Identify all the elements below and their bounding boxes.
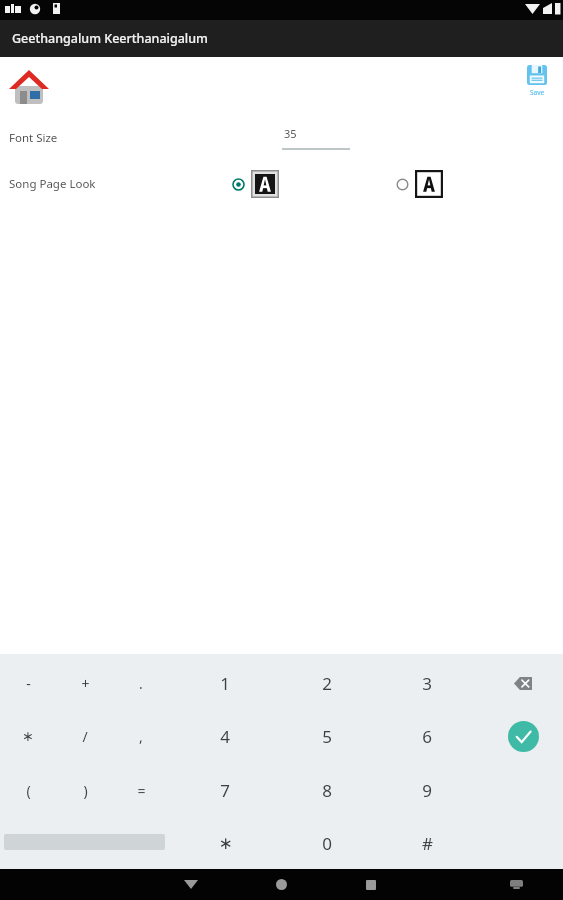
button[interactable]: ∗: [2, 712, 54, 760]
staticText: Font Size: [9, 130, 58, 146]
button[interactable]: ∗: [199, 819, 251, 867]
staticText: ∗: [22, 728, 34, 744]
button[interactable]: 9: [401, 766, 453, 814]
staticText: 4: [220, 725, 230, 748]
button[interactable]: Switch keyboard: [499, 869, 533, 900]
staticText: (: [26, 781, 31, 800]
button[interactable]: [232, 162, 292, 206]
staticText: ): [83, 781, 88, 800]
button[interactable]: Delete: [500, 661, 546, 705]
staticText: ∗: [218, 833, 233, 853]
button[interactable]: 2: [301, 659, 353, 707]
button[interactable]: +: [59, 659, 111, 707]
button[interactable]: #: [401, 819, 453, 867]
button[interactable]: 8: [301, 766, 353, 814]
staticText: ,: [139, 727, 143, 746]
button[interactable]: ): [59, 766, 111, 814]
staticText: Song Page Look: [9, 176, 96, 192]
staticText: 6: [422, 725, 432, 748]
button[interactable]: /: [59, 712, 111, 760]
staticText: 35: [284, 126, 297, 141]
staticText: Save: [530, 88, 545, 97]
staticText: =: [137, 781, 146, 800]
button[interactable]: ,: [115, 712, 167, 760]
staticText: /: [82, 727, 88, 746]
staticText: 2: [322, 672, 332, 695]
staticText: Geethangalum Keerthanaigalum: [12, 30, 208, 47]
button[interactable]: Save: [519, 63, 555, 107]
button[interactable]: =: [115, 766, 167, 814]
button[interactable]: 6: [401, 712, 453, 760]
staticText: -: [26, 674, 31, 693]
staticText: +: [81, 674, 90, 693]
button[interactable]: 4: [199, 712, 251, 760]
button[interactable]: Home: [258, 869, 304, 900]
button[interactable]: 7: [199, 766, 251, 814]
button[interactable]: 5: [301, 712, 353, 760]
button[interactable]: -: [2, 659, 54, 707]
staticText: 7: [220, 779, 230, 802]
button[interactable]: 3: [401, 659, 453, 707]
staticText: 9: [422, 779, 432, 802]
button[interactable]: [396, 162, 456, 206]
staticText: 8: [322, 779, 332, 802]
button[interactable]: 1: [199, 659, 251, 707]
staticText: 3: [422, 672, 432, 695]
button[interactable]: Done: [501, 714, 545, 758]
button[interactable]: 35: [282, 126, 350, 150]
button[interactable]: Recent apps: [348, 869, 394, 900]
staticText: #: [422, 832, 433, 855]
button[interactable]: Back: [168, 869, 214, 900]
staticText: 1: [220, 672, 230, 695]
button[interactable]: .: [115, 659, 167, 707]
staticText: .: [139, 674, 143, 693]
button[interactable]: 0: [301, 819, 353, 867]
button[interactable]: (: [2, 766, 54, 814]
staticText: 0: [322, 832, 332, 855]
button[interactable]: Home: [8, 64, 50, 106]
staticText: 5: [322, 725, 332, 748]
